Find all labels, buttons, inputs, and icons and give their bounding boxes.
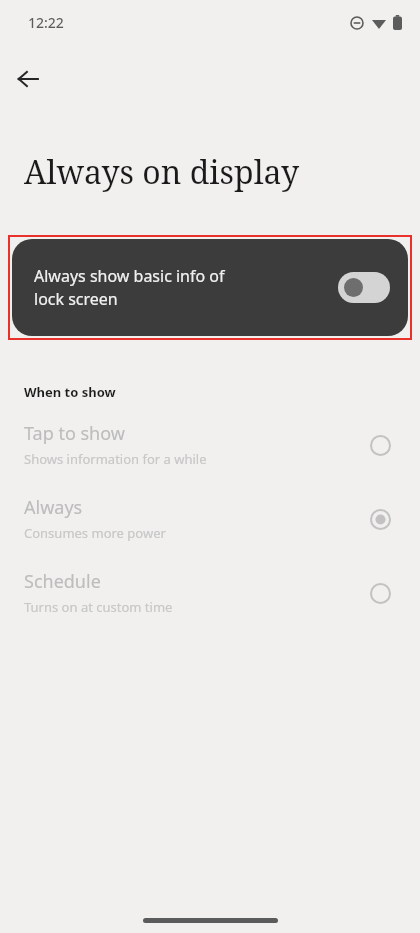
staticText: Consumes more power [24,524,166,542]
button[interactable]: Tap to show [0,421,420,468]
button[interactable]: Always show basic info of lock screen [12,239,408,336]
staticText: Tap to show [24,421,125,446]
staticText: Shows information for a while [24,450,207,468]
button[interactable]: Schedule [0,569,420,616]
staticText: Schedule [24,569,101,594]
button[interactable]: Back [9,60,47,98]
staticText: Always [24,495,83,520]
staticText: Always show basic info of lock screen [34,265,328,310]
staticText: 12:22 [28,13,64,32]
button[interactable]: Always [0,495,420,542]
staticText: Turns on at custom time [24,598,173,616]
staticText: Always on display [24,150,300,194]
staticText: When to show [24,383,116,401]
